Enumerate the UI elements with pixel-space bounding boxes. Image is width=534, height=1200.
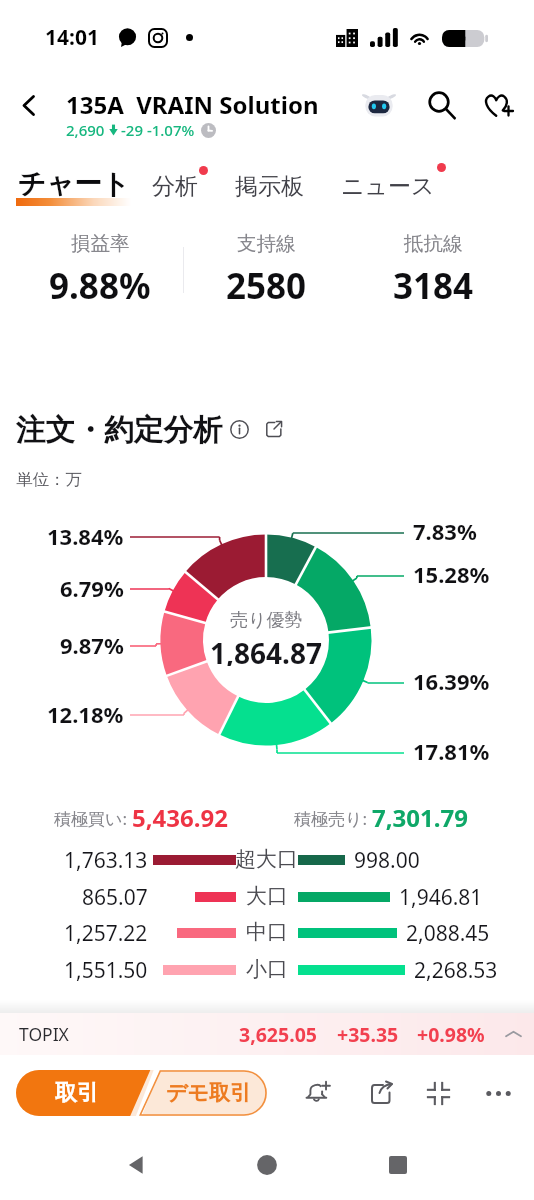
staticText: デモ取引 [166, 1080, 251, 1106]
staticText: 分析 [152, 172, 198, 201]
staticText: 13.84% [47, 521, 124, 549]
staticText: 小口 [246, 956, 288, 982]
staticText: 取引 [55, 1079, 99, 1107]
staticText: 注文・約定分析 [16, 412, 223, 449]
button[interactable]: Add to watchlist [475, 82, 521, 128]
staticText: チャート [18, 167, 130, 202]
button[interactable]: Share [259, 414, 289, 444]
staticText: 売り優勢 [230, 609, 303, 632]
staticText: 1,864.87 [210, 634, 322, 666]
staticText: 1,946.81 [399, 883, 483, 912]
staticText: 9.88% [49, 262, 151, 310]
staticText: 1,551.50 [64, 956, 148, 985]
button[interactable]: TOPIX [0, 1013, 534, 1055]
staticText: ニュース [341, 172, 435, 201]
staticText: 3,625.05 [239, 1021, 317, 1048]
staticText: 単位：万 [16, 469, 82, 490]
button[interactable]: Collapse [414, 1069, 462, 1117]
button[interactable]: チャート [18, 167, 130, 202]
button[interactable]: Info [224, 414, 254, 444]
staticText: 5,436.92 [132, 801, 228, 834]
staticText: 積極買い: [54, 807, 132, 830]
staticText: 2,268.53 [414, 956, 498, 985]
staticText: TOPIX [19, 1022, 69, 1046]
button[interactable]: Back [5, 81, 53, 129]
staticText: 2,690 [66, 120, 105, 140]
staticText: 2,088.45 [406, 919, 490, 948]
staticText: 損益率 [71, 231, 130, 256]
staticText: 14:01 [45, 23, 99, 52]
button[interactable]: 掲示板 [235, 172, 304, 201]
staticText: 超大口 [235, 846, 298, 872]
button[interactable]: ニュース [341, 172, 435, 201]
staticText: 1,257.22 [64, 919, 148, 948]
button[interactable]: AI assistant [356, 82, 402, 128]
staticText: +0.98% [417, 1021, 485, 1048]
staticText: 7.83% [413, 516, 477, 544]
staticText: 15.28% [413, 559, 490, 587]
button[interactable]: 分析 [152, 172, 198, 201]
staticText: 135A VRAIN Solution [66, 88, 319, 121]
button[interactable]: Search [419, 82, 465, 128]
button[interactable]: Price alert [295, 1069, 343, 1117]
staticText: -29 -1.07% [121, 120, 195, 140]
staticText: 2580 [226, 262, 307, 310]
staticText: 大口 [246, 883, 288, 909]
staticText: 抵抗線 [404, 231, 463, 256]
staticText: 7,301.79 [372, 801, 468, 834]
staticText: 掲示板 [235, 172, 304, 201]
staticText: 17.81% [413, 736, 490, 764]
staticText: 中口 [246, 919, 288, 945]
button[interactable]: Back [112, 1141, 160, 1189]
staticText: 9.87% [60, 630, 124, 658]
staticText: 積極売り: [294, 807, 372, 830]
button[interactable]: Share [357, 1069, 405, 1117]
staticText: 支持線 [237, 231, 296, 256]
button[interactable]: 取引 [16, 1070, 144, 1116]
staticText: 3184 [393, 262, 474, 310]
button[interactable]: More options [474, 1069, 522, 1117]
staticText: 6.79% [60, 573, 124, 601]
staticText: 865.07 [82, 883, 148, 912]
button[interactable]: デモ取引 [144, 1070, 267, 1116]
staticText: 16.39% [413, 666, 490, 694]
button[interactable]: Home [243, 1141, 291, 1189]
staticText: +35.35 [337, 1021, 399, 1048]
staticText: 12.18% [47, 699, 124, 727]
button[interactable]: Recent apps [374, 1141, 422, 1189]
staticText: 998.00 [354, 846, 420, 875]
staticText: 1,763.13 [64, 846, 148, 875]
